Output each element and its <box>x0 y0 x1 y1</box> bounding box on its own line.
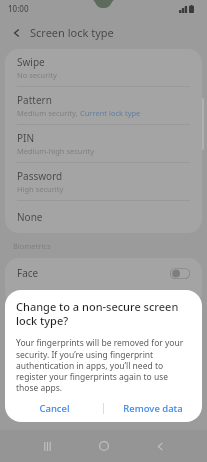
button[interactable]: None <box>5 201 202 233</box>
staticText: Medium-high security <box>17 146 95 156</box>
staticText: Password <box>17 169 63 183</box>
button[interactable]: Face toggle <box>170 268 190 279</box>
staticText: None <box>17 210 43 224</box>
staticText: Remove data <box>123 402 183 415</box>
button[interactable]: Face <box>5 258 202 288</box>
button[interactable]: Recents <box>38 437 56 455</box>
staticText: Current lock type <box>80 108 141 118</box>
staticText: No security <box>17 70 57 80</box>
button[interactable]: Pattern <box>5 87 202 124</box>
staticText: Swipe <box>17 55 45 69</box>
button[interactable]: Back <box>4 20 30 46</box>
staticText: Biometrics <box>13 241 51 251</box>
button[interactable]: PIN <box>5 125 202 162</box>
staticText: Face <box>17 266 170 280</box>
staticText: 10:00 <box>8 3 29 14</box>
button[interactable]: Swipe <box>5 49 202 86</box>
staticText: PIN <box>17 131 35 145</box>
staticText: Cancel <box>39 402 70 415</box>
staticText: Screen lock type <box>30 25 114 40</box>
staticText: Your fingerprints will be removed for yo… <box>16 337 191 394</box>
button[interactable]: Home <box>95 437 113 455</box>
button[interactable]: Password <box>5 163 202 200</box>
button[interactable]: Cancel <box>5 394 103 422</box>
button[interactable]: Back <box>151 437 169 455</box>
button[interactable]: Remove data <box>104 394 202 422</box>
staticText: Change to a non-secure screen lock type? <box>16 299 191 328</box>
staticText: Pattern <box>17 93 52 107</box>
staticText: Medium security, <box>17 108 80 118</box>
staticText: High security <box>17 184 64 194</box>
